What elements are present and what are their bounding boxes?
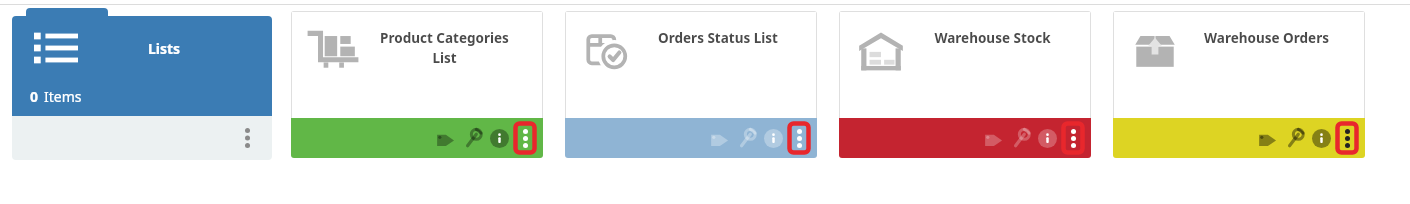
button[interactable]: Lists <box>12 8 272 160</box>
staticText: Orders Status List <box>658 29 778 47</box>
staticText: Items <box>44 87 82 106</box>
button[interactable]: More options <box>1062 122 1084 154</box>
button[interactable]: Tags <box>433 126 457 150</box>
button[interactable]: Tags <box>1255 126 1279 150</box>
button[interactable]: Tags <box>981 126 1005 150</box>
button[interactable]: Information <box>487 126 511 150</box>
button[interactable]: More options <box>236 123 258 153</box>
button[interactable]: Orders Status List <box>565 11 817 158</box>
staticText: 0 <box>30 87 39 106</box>
button[interactable]: Warehouse Stock <box>839 11 1091 158</box>
staticText: Lists <box>148 39 181 58</box>
button[interactable]: More options <box>1336 122 1358 154</box>
button[interactable]: More options <box>514 122 536 154</box>
button[interactable]: Settings <box>1008 126 1032 150</box>
button[interactable]: Warehouse Orders <box>1113 11 1365 158</box>
button[interactable]: Settings <box>460 126 484 150</box>
button[interactable]: More options <box>788 122 810 154</box>
button[interactable]: Product Categories List <box>291 11 543 158</box>
button[interactable]: Information <box>1035 126 1059 150</box>
staticText: Warehouse Orders <box>1204 29 1329 47</box>
button[interactable]: Settings <box>1282 126 1306 150</box>
button[interactable]: Information <box>761 126 785 150</box>
button[interactable]: Tags <box>707 126 731 150</box>
button[interactable]: Settings <box>734 126 758 150</box>
staticText: Warehouse Stock <box>934 29 1051 47</box>
button[interactable]: Information <box>1309 126 1333 150</box>
staticText: Product Categories List <box>380 29 509 67</box>
